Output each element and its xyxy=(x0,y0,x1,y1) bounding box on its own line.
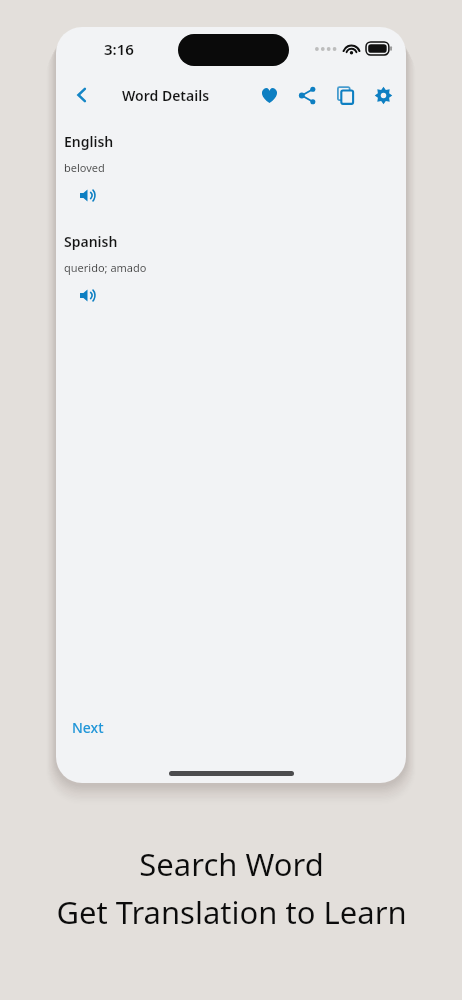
button[interactable]: Favorite xyxy=(254,80,284,110)
button[interactable]: Copy xyxy=(330,80,360,110)
staticText: Word Details xyxy=(122,86,210,105)
staticText: beloved xyxy=(64,160,105,175)
button[interactable]: Play English pronunciation xyxy=(74,182,100,208)
staticText: Search Word xyxy=(139,843,324,885)
staticText: Spanish xyxy=(64,232,118,251)
button[interactable]: Play Spanish pronunciation xyxy=(74,282,100,308)
button[interactable]: Back xyxy=(65,78,99,112)
staticText: Next xyxy=(72,718,104,737)
staticText: Get Translation to Learn xyxy=(56,891,407,933)
button[interactable]: Share xyxy=(292,80,322,110)
staticText: 3:16 xyxy=(104,39,134,59)
button[interactable]: Settings xyxy=(368,80,398,110)
staticText: English xyxy=(64,132,114,151)
staticText: querido; amado xyxy=(64,260,147,275)
button[interactable]: Next xyxy=(62,712,114,743)
